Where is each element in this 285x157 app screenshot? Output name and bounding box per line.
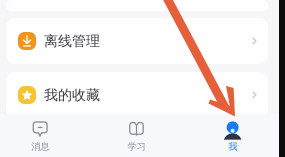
button[interactable]: 学习	[88, 114, 185, 157]
staticText: 离线管理	[44, 32, 100, 50]
button[interactable]: 我的收藏	[6, 72, 268, 118]
button[interactable]: 我	[185, 114, 281, 157]
staticText: 我	[228, 141, 237, 152]
button[interactable]: 消息	[0, 114, 88, 157]
staticText: 消息	[31, 141, 49, 152]
staticText: 我的收藏	[44, 86, 100, 104]
button[interactable]: 离线管理	[6, 18, 268, 64]
staticText: 学习	[127, 141, 145, 152]
